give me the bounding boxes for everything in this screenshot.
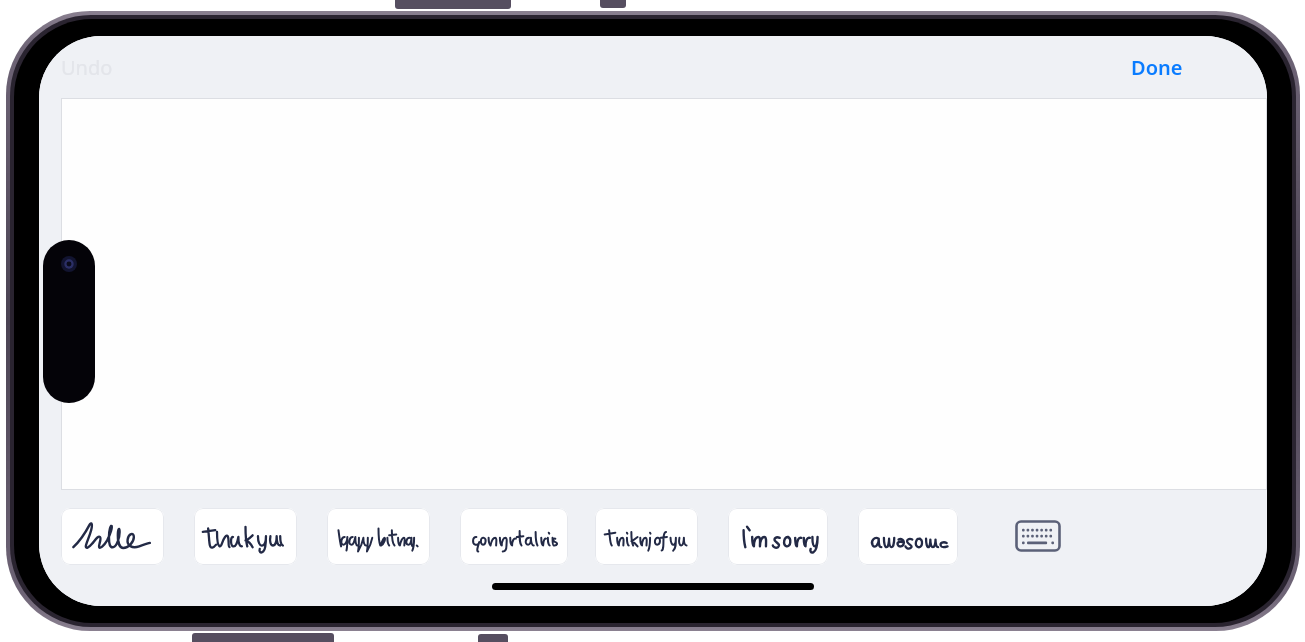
staticText: Undo — [61, 54, 113, 81]
button[interactable]: Done — [1125, 50, 1189, 85]
staticText: Done — [1131, 54, 1183, 81]
button[interactable]: Undo — [55, 50, 119, 85]
button[interactable]: awesome — [858, 508, 958, 565]
button[interactable]: hello — [61, 508, 164, 565]
button[interactable] — [61, 98, 1267, 490]
button[interactable]: congratulations — [460, 508, 568, 565]
button[interactable]: Keyboard — [1010, 513, 1066, 559]
button[interactable]: thank you — [194, 508, 297, 565]
button[interactable]: happy birthday — [327, 508, 430, 565]
button[interactable]: thinking of you — [595, 508, 698, 565]
button[interactable]: I'm sorry — [728, 508, 828, 565]
